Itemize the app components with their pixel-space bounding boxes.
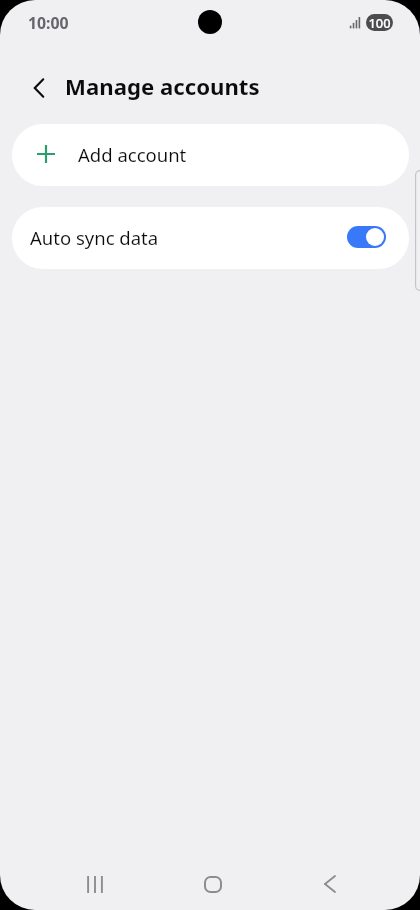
staticText: Add account: [78, 142, 187, 167]
button[interactable]: Recent apps: [65, 859, 125, 909]
staticText: 100: [368, 14, 391, 31]
staticText: 10:00: [28, 12, 69, 34]
button[interactable]: Back: [17, 66, 61, 110]
staticText: Manage accounts: [65, 71, 260, 101]
staticText: Auto sync data: [30, 225, 159, 250]
button[interactable]: Back: [300, 859, 360, 909]
button[interactable]: Auto sync data: [347, 226, 386, 248]
button[interactable]: Add account: [12, 124, 409, 186]
button[interactable]: Home: [183, 859, 243, 909]
button[interactable]: Auto sync data: [12, 207, 409, 269]
